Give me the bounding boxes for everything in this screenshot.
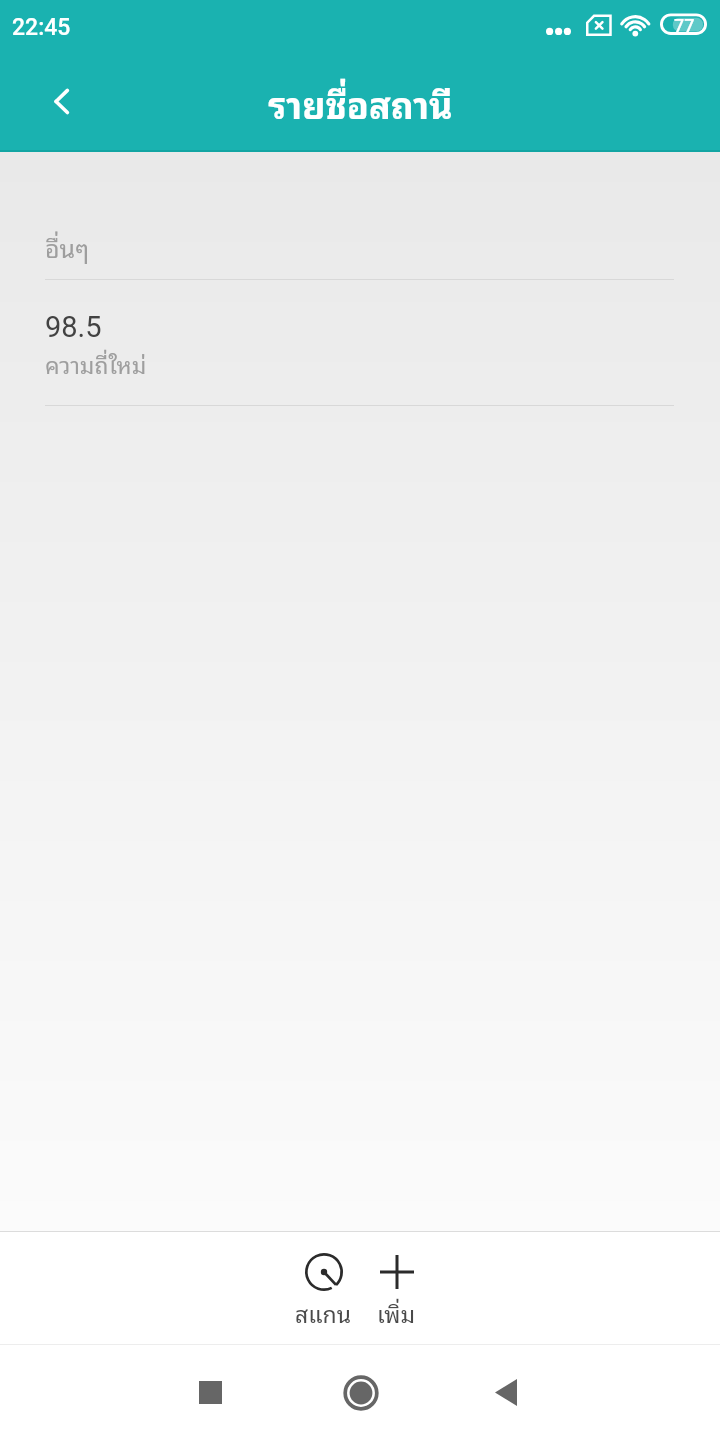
button[interactable]: Add — [360, 1231, 433, 1344]
staticText: 98.5 — [45, 310, 102, 344]
staticText: 77 — [674, 15, 695, 36]
button[interactable]: Back — [475, 1362, 536, 1423]
staticText: สแกน — [295, 1294, 352, 1331]
button[interactable]: Back — [33, 50, 91, 152]
staticText: เพิ่ม — [377, 1294, 416, 1331]
staticText: 22:45 — [12, 14, 71, 41]
button[interactable]: Scan — [287, 1231, 360, 1344]
staticText: ความถี่ใหม่ — [45, 345, 147, 382]
staticText: รายชื่อสถานี — [268, 74, 453, 132]
staticText: อื่นๆ — [45, 227, 90, 267]
button[interactable]: Recent apps — [180, 1362, 241, 1423]
button[interactable]: 98.5 — [0, 280, 720, 405]
button[interactable]: Home — [330, 1362, 391, 1423]
